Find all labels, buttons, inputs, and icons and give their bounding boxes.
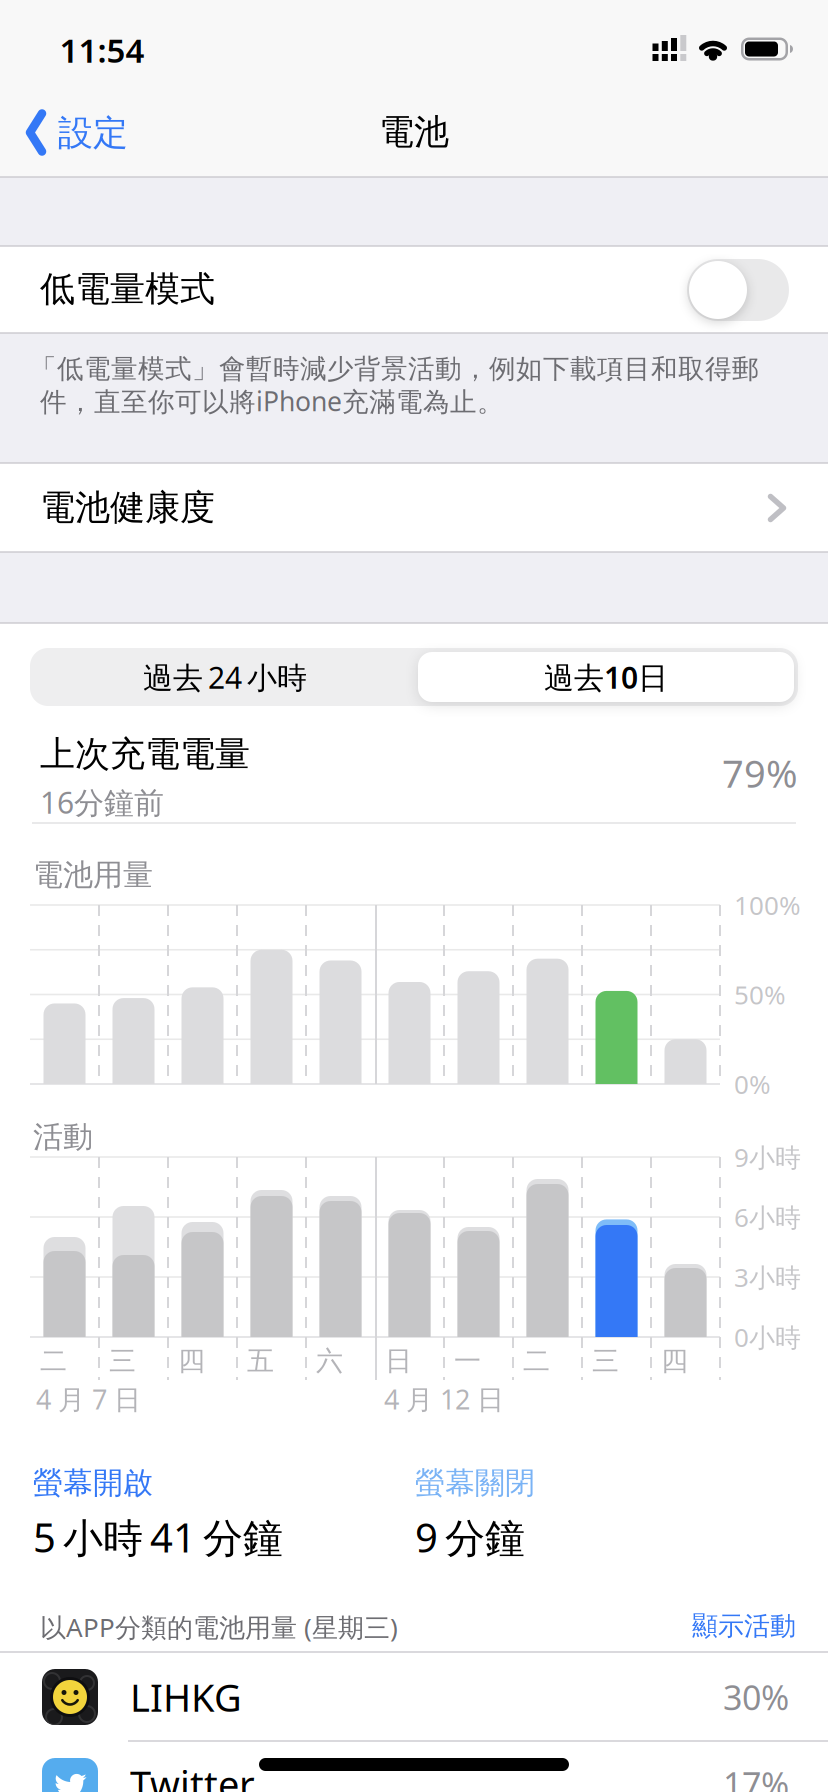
staticText: 活動 bbox=[33, 1118, 93, 1156]
button[interactable]: 低電量模式 bbox=[687, 259, 789, 321]
staticText: 5 小時 41 分鐘 bbox=[33, 1510, 283, 1564]
staticText: 16分鐘前 bbox=[40, 782, 164, 822]
staticText: 以APP分類的電池用量 (星期三) bbox=[40, 1609, 398, 1645]
staticText: 二 bbox=[40, 1344, 67, 1378]
staticText: 日 bbox=[385, 1344, 412, 1378]
staticText: 4 月 12 日 bbox=[384, 1381, 504, 1417]
staticText: 二 bbox=[523, 1344, 550, 1378]
staticText: 電池健康度 bbox=[40, 485, 215, 530]
button[interactable]: 電池健康度 bbox=[0, 463, 828, 552]
staticText: LIHKG bbox=[130, 1671, 242, 1723]
button[interactable]: Twitter bbox=[0, 1741, 828, 1792]
staticText: 電池 bbox=[379, 110, 449, 154]
staticText: 0小時 bbox=[734, 1319, 801, 1355]
staticText: 9小時 bbox=[734, 1139, 801, 1175]
staticText: 螢幕開啟 bbox=[33, 1464, 153, 1502]
staticText: 件，直至你可以將iPhone充滿電為止。 bbox=[40, 383, 504, 419]
staticText: 螢幕關閉 bbox=[415, 1464, 535, 1502]
staticText: 79% bbox=[722, 747, 798, 799]
staticText: 過去10日 bbox=[544, 657, 668, 697]
staticText: 「低電量模式」會暫時減少背景活動，例如下載項目和取得郵 bbox=[30, 352, 759, 386]
button[interactable]: 過去10日 bbox=[418, 652, 794, 702]
staticText: 電池用量 bbox=[33, 856, 153, 894]
button[interactable]: 設定 bbox=[28, 103, 208, 163]
staticText: 100% bbox=[734, 887, 801, 923]
staticText: 30% bbox=[723, 1674, 789, 1720]
staticText: 0% bbox=[734, 1066, 771, 1102]
staticText: 11:54 bbox=[59, 27, 144, 72]
staticText: 三 bbox=[592, 1344, 619, 1378]
button[interactable]: 顯示活動 bbox=[496, 1604, 796, 1648]
staticText: 上次充電電量 bbox=[40, 732, 250, 776]
staticText: 四 bbox=[178, 1344, 205, 1378]
staticText: 3小時 bbox=[734, 1259, 801, 1295]
staticText: 過去 24 小時 bbox=[143, 657, 307, 697]
staticText: 設定 bbox=[58, 111, 128, 155]
staticText: 六 bbox=[316, 1344, 343, 1378]
staticText: 顯示活動 bbox=[692, 1610, 796, 1642]
staticText: 9 分鐘 bbox=[415, 1510, 525, 1564]
staticText: 一 bbox=[454, 1344, 481, 1378]
button[interactable]: 過去 24 小時 bbox=[37, 652, 413, 702]
staticText: 五 bbox=[247, 1344, 274, 1378]
staticText: 50% bbox=[734, 977, 786, 1012]
staticText: 6小時 bbox=[734, 1199, 801, 1235]
staticText: Twitter bbox=[130, 1758, 255, 1792]
staticText: 四 bbox=[661, 1344, 688, 1378]
staticText: 4 月 7 日 bbox=[36, 1381, 141, 1417]
button[interactable]: LIHKG bbox=[0, 1652, 828, 1741]
staticText: 低電量模式 bbox=[40, 267, 215, 311]
staticText: 三 bbox=[109, 1344, 136, 1378]
staticText: 17% bbox=[723, 1761, 789, 1792]
